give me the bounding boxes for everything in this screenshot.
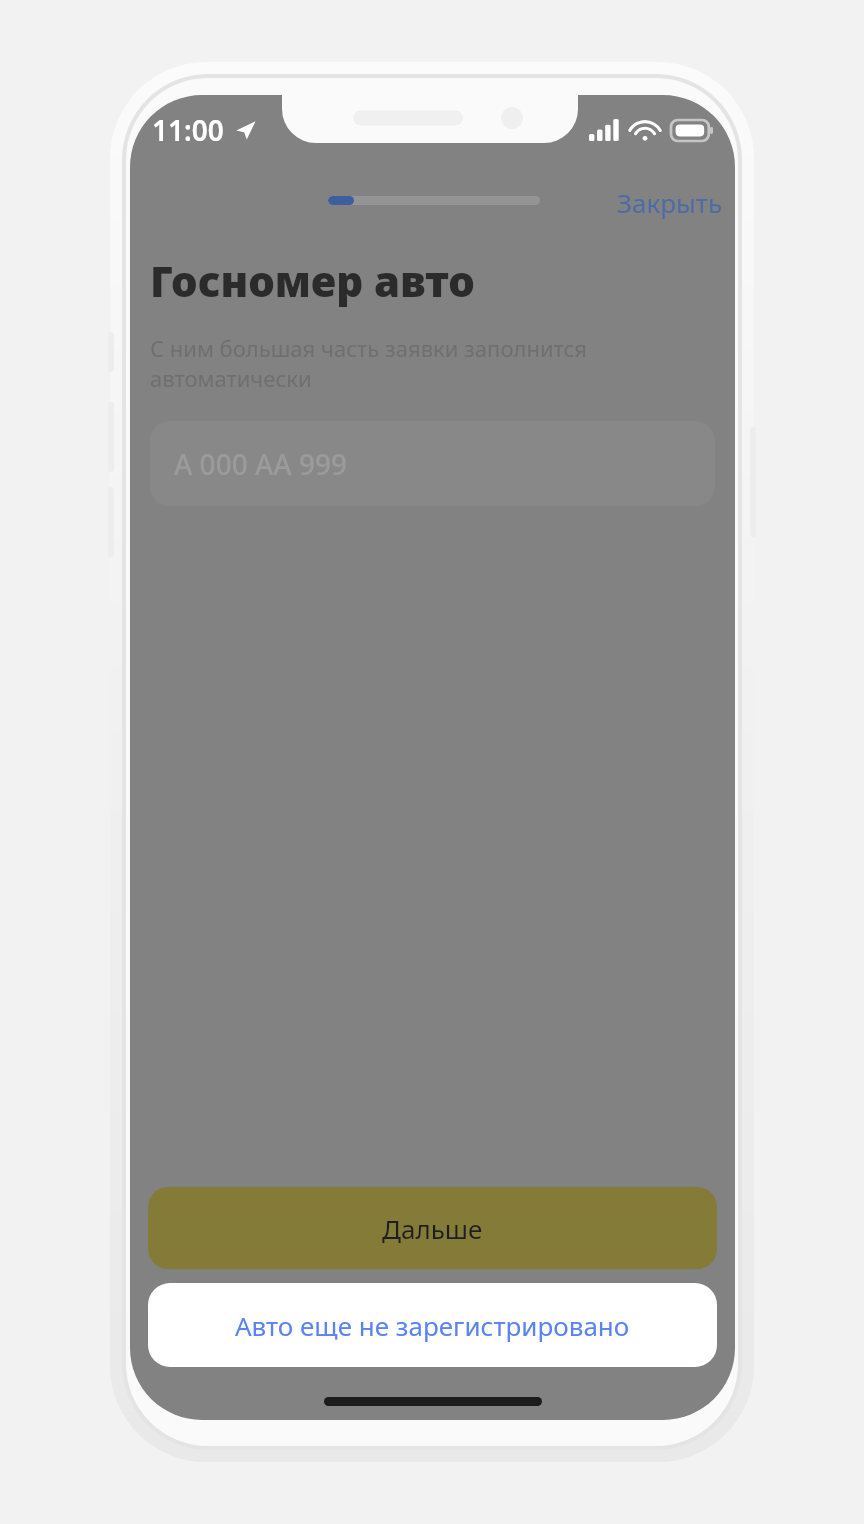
button[interactable]: Дальше [148,1187,717,1269]
button[interactable]: Авто еще не зарегистрировано [148,1283,717,1367]
staticText: Дальше [382,1211,483,1246]
staticText: Авто еще не зарегистрировано [235,1308,630,1343]
staticText: Госномер авто [150,252,475,309]
staticText: Закрыть [617,185,723,220]
staticText: A 000 AA 999 [174,445,347,483]
staticText: 11:00 [152,111,224,149]
button[interactable]: Закрыть [609,181,731,224]
staticText: С ним большая часть заявки заполнится ав… [150,333,587,393]
